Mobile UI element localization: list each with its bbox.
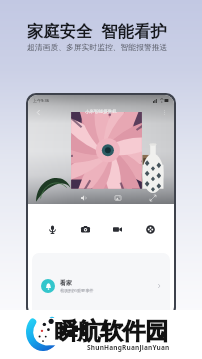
- staticText: 看家: [60, 279, 72, 287]
- button[interactable]: Microphone: [42, 219, 62, 239]
- staticText: 小米智能摄像机: [85, 109, 117, 115]
- button[interactable]: More options: [159, 107, 169, 117]
- button[interactable]: Screenshot: [75, 219, 95, 239]
- staticText: 上午9:36: [33, 98, 49, 103]
- button[interactable]: Pan tilt control: [140, 219, 160, 239]
- button[interactable]: Back: [33, 107, 43, 117]
- staticText: ShunHangRuanJianYuan: [87, 343, 170, 352]
- staticText: 超清画质、多屏实时监控、智能报警推送: [27, 42, 168, 52]
- button[interactable]: Record video: [107, 219, 127, 239]
- button[interactable]: 看家: [32, 253, 170, 316]
- staticText: 家庭安全 智能看护: [27, 20, 167, 42]
- button[interactable]: Full screen: [147, 192, 158, 203]
- button[interactable]: Sound: [77, 192, 88, 203]
- staticText: 瞬航软件园: [55, 317, 168, 346]
- staticText: 检测到的重要事件: [60, 288, 94, 293]
- button[interactable]: Snapshot: [112, 192, 123, 203]
